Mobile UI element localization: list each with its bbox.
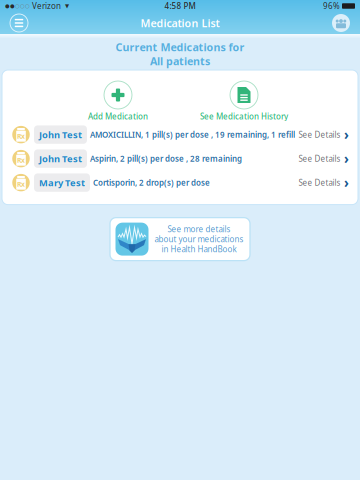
button[interactable]: Add Medication bbox=[88, 81, 148, 122]
button[interactable]: Menu bbox=[4, 12, 34, 34]
staticText: ●● bbox=[5, 3, 15, 9]
button[interactable]: Patients bbox=[326, 12, 356, 34]
staticText: Mary Test bbox=[39, 176, 85, 189]
staticText: 4:58 PM bbox=[164, 1, 195, 11]
staticText: See more details bbox=[167, 224, 230, 234]
staticText: › bbox=[344, 150, 349, 167]
staticText: John Test bbox=[39, 152, 82, 165]
staticText: Cortisporin, 2 drop(s) per dose bbox=[93, 177, 210, 188]
staticText: John Test bbox=[39, 128, 82, 141]
button[interactable]: See Medication History bbox=[200, 81, 288, 122]
button[interactable]: Rx bbox=[2, 123, 358, 147]
button[interactable]: Rx bbox=[2, 147, 358, 171]
staticText: See Details bbox=[298, 153, 340, 164]
staticText: Verizon bbox=[30, 1, 61, 11]
staticText: Aspirin, 2 pill(s) per dose , 28 remaini… bbox=[90, 153, 242, 164]
staticText: about your medications bbox=[154, 234, 243, 244]
staticText: AMOXICILLIN, 1 pill(s) per dose , 19 rem… bbox=[90, 129, 295, 140]
staticText: See Medication History bbox=[200, 111, 288, 122]
staticText: Rx bbox=[17, 156, 25, 165]
button[interactable]: Rx bbox=[2, 171, 358, 195]
staticText: Current Medications for bbox=[115, 40, 244, 54]
staticText: All patients bbox=[150, 54, 210, 68]
staticText: See Details bbox=[298, 129, 340, 140]
staticText: See Details bbox=[298, 177, 340, 188]
staticText: ○○○ bbox=[15, 3, 30, 9]
staticText: Medication List bbox=[140, 16, 219, 30]
staticText: › bbox=[344, 174, 349, 191]
staticText: 96% bbox=[323, 1, 340, 11]
button[interactable]: See more details bbox=[110, 218, 250, 261]
staticText: Rx bbox=[17, 132, 25, 141]
staticText: Add Medication bbox=[88, 111, 148, 122]
staticText: › bbox=[344, 126, 349, 143]
staticText: in Health HandBook bbox=[161, 244, 236, 254]
staticText: ▼ bbox=[61, 3, 69, 9]
staticText: Rx bbox=[17, 180, 25, 189]
